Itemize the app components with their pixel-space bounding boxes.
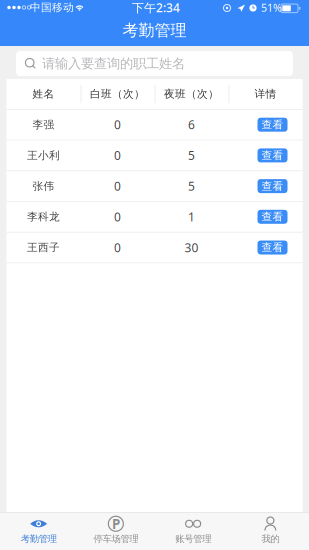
- staticText: 0: [114, 209, 121, 225]
- staticText: 夜班（次）: [164, 87, 219, 100]
- staticText: 查看: [261, 179, 283, 193]
- staticText: 0: [114, 147, 121, 163]
- button[interactable]: 查看: [257, 148, 287, 162]
- staticText: 1: [188, 209, 195, 225]
- button[interactable]: 账号管理: [154, 512, 232, 549]
- staticText: 查看: [261, 210, 283, 223]
- button[interactable]: 我的: [232, 512, 309, 549]
- staticText: 姓名: [32, 87, 54, 100]
- staticText: 张伟: [32, 179, 54, 193]
- staticText: 详情: [254, 87, 276, 100]
- staticText: 请输入要查询的职工姓名: [42, 55, 185, 72]
- staticText: P: [112, 515, 120, 533]
- staticText: 查看: [261, 118, 283, 131]
- staticText: 考勤管理: [122, 21, 186, 40]
- staticText: 停车场管理: [93, 533, 138, 545]
- staticText: 6: [188, 117, 195, 133]
- staticText: 查看: [261, 149, 283, 162]
- button[interactable]: 查看: [257, 118, 287, 132]
- staticText: 王西子: [27, 241, 60, 254]
- button[interactable]: 查看: [257, 210, 287, 224]
- button[interactable]: 考勤管理: [0, 512, 77, 549]
- staticText: 51%: [261, 0, 282, 15]
- staticText: 5: [188, 147, 195, 163]
- button[interactable]: P: [77, 512, 154, 549]
- staticText: 下午2:34: [132, 0, 180, 15]
- staticText: 李科龙: [27, 210, 60, 223]
- button[interactable]: 查看: [257, 179, 287, 193]
- staticText: 王小利: [27, 149, 60, 162]
- staticText: 账号管理: [175, 533, 211, 545]
- staticText: 5: [188, 178, 195, 194]
- staticText: 李强: [32, 118, 54, 131]
- staticText: 0: [114, 239, 121, 255]
- staticText: 我的: [261, 533, 279, 545]
- staticText: 查看: [261, 241, 283, 254]
- staticText: 0: [114, 178, 121, 194]
- staticText: 0: [114, 117, 121, 133]
- staticText: 考勤管理: [21, 533, 57, 545]
- staticText: 30: [184, 239, 198, 255]
- button[interactable]: 查看: [257, 240, 287, 254]
- staticText: 白班（次）: [90, 87, 145, 100]
- button[interactable]: 请输入要查询的职工姓名: [16, 51, 293, 76]
- staticText: 中国移动: [30, 1, 74, 14]
